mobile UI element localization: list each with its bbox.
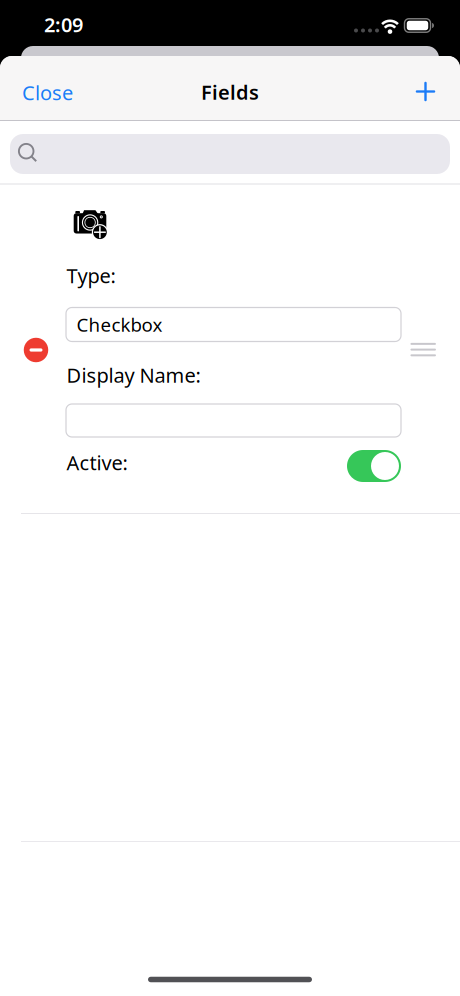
button[interactable]: Add Photo <box>66 207 110 243</box>
staticText: Close <box>22 79 73 106</box>
button[interactable]: Display Name <box>66 404 401 437</box>
staticText: Checkbox <box>76 312 162 337</box>
button[interactable]: Active <box>347 450 401 482</box>
button[interactable]: Delete <box>24 338 48 362</box>
button[interactable]: Close <box>22 79 122 106</box>
button[interactable]: Search <box>10 134 450 174</box>
staticText: Active: <box>66 449 127 476</box>
staticText: Type: <box>66 262 115 289</box>
button[interactable]: Add <box>410 76 440 106</box>
staticText: Fields <box>201 79 259 105</box>
button[interactable]: Type, Checkbox <box>66 307 401 341</box>
button[interactable]: Reorder <box>410 341 436 358</box>
staticText: 2:09 <box>44 11 83 38</box>
staticText: Display Name: <box>66 362 200 388</box>
